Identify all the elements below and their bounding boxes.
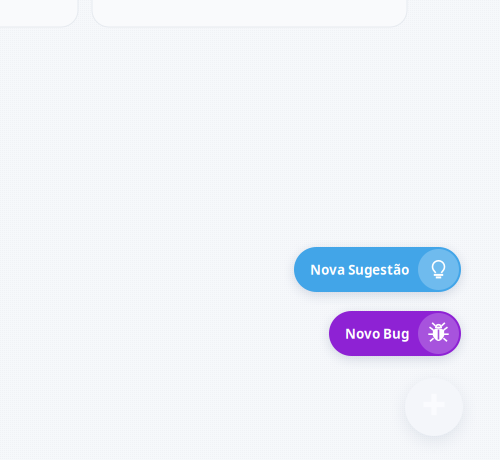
button[interactable]: Nova Sugestão [294,247,461,292]
button[interactable]: Add [405,378,463,436]
staticText: Nova Sugestão [310,261,409,278]
button[interactable]: Novo Bug [329,311,461,356]
staticText: Novo Bug [345,325,409,342]
